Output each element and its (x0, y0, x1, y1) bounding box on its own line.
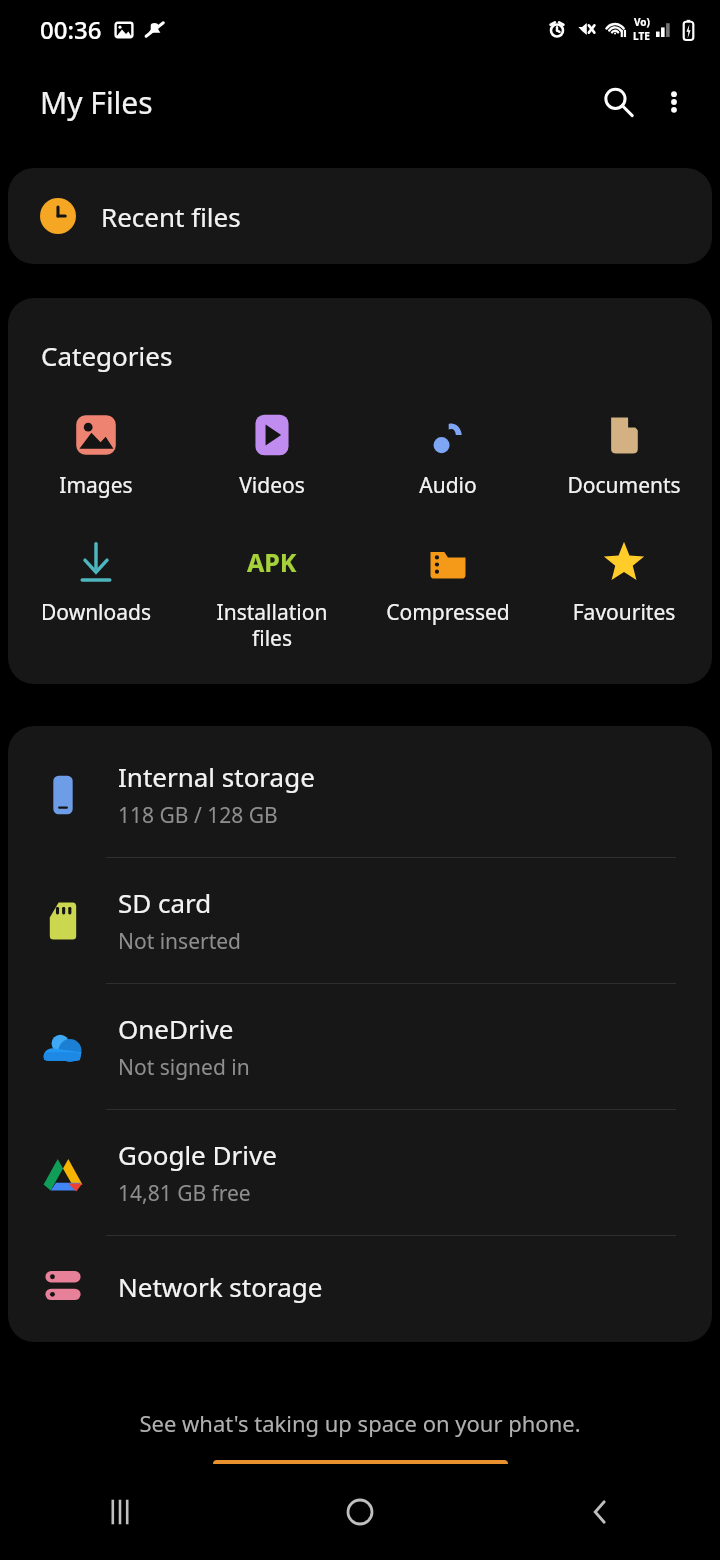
staticText: Compressed (360, 598, 536, 627)
staticText: Recent files (101, 199, 241, 234)
staticText: LTE (633, 29, 650, 43)
button[interactable]: Videos (184, 405, 360, 504)
button[interactable]: OneDrive (8, 984, 712, 1110)
button[interactable]: APK (184, 532, 360, 656)
button[interactable]: Downloads (8, 532, 184, 631)
button[interactable]: Home (240, 1464, 480, 1560)
staticText: 14,81 GB free (118, 1179, 251, 1208)
staticText: Videos (184, 471, 360, 500)
staticText: Downloads (8, 598, 184, 627)
button[interactable]: Audio (360, 405, 536, 504)
button[interactable] (213, 1460, 508, 1464)
staticText: See what's taking up space on your phone… (0, 1408, 720, 1438)
button[interactable]: Recents (0, 1464, 240, 1560)
button[interactable]: Recent files (8, 168, 712, 264)
button[interactable]: Internal storage (8, 732, 712, 858)
staticText: 118 GB / 128 GB (118, 801, 278, 830)
button[interactable]: Network storage (8, 1236, 712, 1336)
staticText: APK (247, 545, 297, 579)
staticText: OneDrive (118, 1011, 234, 1046)
button[interactable]: Back (480, 1464, 720, 1560)
button[interactable]: More options (646, 74, 702, 130)
button[interactable]: Search (590, 74, 646, 130)
staticText: Installation files (184, 598, 360, 652)
staticText: 00:36 (40, 13, 102, 46)
button[interactable]: Compressed (360, 532, 536, 631)
button[interactable]: Favourites (536, 532, 712, 631)
staticText: SD card (118, 885, 212, 920)
staticText: Vo) (634, 15, 650, 29)
button[interactable]: Images (8, 405, 184, 504)
staticText: Audio (360, 471, 536, 500)
button[interactable]: Documents (536, 405, 712, 504)
staticText: Not signed in (118, 1053, 250, 1082)
staticText: Images (8, 471, 184, 500)
staticText: Favourites (536, 598, 712, 627)
staticText: Not inserted (118, 927, 242, 956)
staticText: Categories (41, 338, 173, 373)
staticText: Network storage (118, 1269, 323, 1304)
staticText: Documents (536, 471, 712, 500)
staticText: My Files (40, 82, 153, 123)
button[interactable]: SD card (8, 858, 712, 984)
button[interactable]: Google Drive (8, 1110, 712, 1236)
staticText: Google Drive (118, 1137, 277, 1172)
staticText: Internal storage (118, 759, 315, 794)
